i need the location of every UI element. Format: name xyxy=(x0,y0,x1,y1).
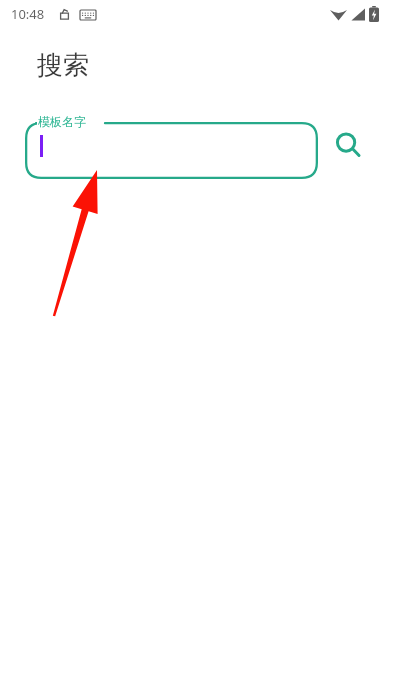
button[interactable]: Search xyxy=(327,124,369,166)
staticText: 10:48 xyxy=(11,5,45,23)
button[interactable] xyxy=(25,122,318,179)
staticText: 搜索 xyxy=(37,49,89,82)
staticText: 模板名字 xyxy=(38,114,86,129)
